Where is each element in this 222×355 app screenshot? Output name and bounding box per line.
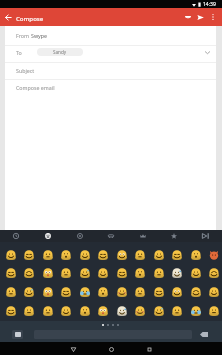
button[interactable]: Emoji — [56, 301, 75, 320]
button[interactable]: Back — [54, 343, 92, 355]
button[interactable]: Emoji — [93, 245, 112, 264]
button[interactable]: Emoji — [130, 282, 149, 301]
button[interactable]: Symbols — [158, 230, 190, 242]
button[interactable]: Emoji — [75, 245, 94, 264]
button[interactable]: Emoji — [93, 282, 112, 301]
button[interactable]: Emoji — [38, 245, 57, 264]
button[interactable]: Switch keyboard — [12, 330, 23, 339]
button[interactable]: Emoji — [149, 282, 168, 301]
button[interactable]: Sandy — [37, 48, 83, 56]
staticText: 14:39 — [203, 1, 216, 8]
button[interactable]: Emoji — [130, 263, 149, 282]
button[interactable]: Emoji — [38, 282, 57, 301]
button[interactable]: Emoji — [112, 245, 131, 264]
button[interactable]: Recent apps — [130, 343, 168, 355]
button[interactable]: Emoji — [149, 245, 168, 264]
button[interactable]: Send — [193, 8, 208, 26]
button[interactable]: Recent — [0, 230, 32, 242]
button[interactable]: Emoji — [1, 301, 20, 320]
button[interactable]: Emoji — [93, 263, 112, 282]
button[interactable]: Emoji — [112, 301, 131, 320]
button[interactable]: Emoji — [130, 245, 149, 264]
staticText: Sandy — [53, 49, 67, 55]
button[interactable]: Emoji — [149, 301, 168, 320]
staticText: Subject — [16, 67, 35, 74]
button[interactable]: Emoji — [186, 301, 205, 320]
button[interactable]: Emoji — [56, 282, 75, 301]
button[interactable]: Emoji — [56, 245, 75, 264]
button[interactable]: Emoji — [204, 282, 222, 301]
button[interactable]: To — [5, 45, 216, 59]
button[interactable]: Emoji — [56, 263, 75, 282]
staticText: To — [16, 49, 22, 56]
button[interactable]: Emoji — [1, 263, 20, 282]
button[interactable]: Objects — [127, 230, 159, 242]
button[interactable]: Emoji — [204, 301, 222, 320]
staticText: Swype — [31, 32, 48, 39]
button[interactable]: Emoji — [204, 245, 222, 264]
button[interactable]: Emoji — [167, 245, 186, 264]
button[interactable]: Emoji — [204, 263, 222, 282]
button[interactable]: Emoji — [130, 301, 149, 320]
button[interactable]: Emoji — [38, 301, 57, 320]
button[interactable]: Emoji — [167, 301, 186, 320]
button[interactable]: Emoji — [38, 263, 57, 282]
staticText: Compose email — [16, 84, 55, 91]
button[interactable]: Emoji — [167, 282, 186, 301]
button[interactable]: Emoji — [75, 282, 94, 301]
button[interactable]: Nature — [64, 230, 96, 242]
button[interactable]: Backspace — [197, 330, 211, 339]
button[interactable]: Emoji — [1, 282, 20, 301]
button[interactable]: Subject — [5, 62, 216, 79]
button[interactable]: Emoji — [19, 282, 38, 301]
button[interactable]: Expand recipients — [199, 45, 215, 59]
button[interactable]: Emoji — [186, 263, 205, 282]
button[interactable]: Emoji — [112, 263, 131, 282]
button[interactable]: Emoji — [1, 245, 20, 264]
button[interactable]: Smileys — [32, 230, 64, 242]
button[interactable]: Emoji — [19, 245, 38, 264]
button[interactable]: Emoji — [19, 263, 38, 282]
staticText: Compose — [16, 14, 44, 22]
button[interactable]: Emoji — [167, 263, 186, 282]
button[interactable]: Next page — [194, 230, 216, 242]
button[interactable]: Emoji — [112, 282, 131, 301]
button[interactable]: Emoji — [186, 282, 205, 301]
button[interactable]: Emoji — [186, 245, 205, 264]
staticText: From — [16, 32, 29, 39]
button[interactable]: Back — [2, 8, 15, 26]
button[interactable]: Emoji — [93, 301, 112, 320]
button[interactable]: From — [5, 26, 216, 45]
button[interactable]: Home — [92, 343, 130, 355]
button[interactable]: Emoji — [19, 301, 38, 320]
button[interactable]: Attach file — [180, 8, 195, 26]
button[interactable]: Travel — [95, 230, 127, 242]
button[interactable]: Emoji — [149, 263, 168, 282]
button[interactable]: Emoji — [75, 301, 94, 320]
button[interactable]: More options — [207, 8, 219, 26]
button[interactable]: Emoji — [75, 263, 94, 282]
